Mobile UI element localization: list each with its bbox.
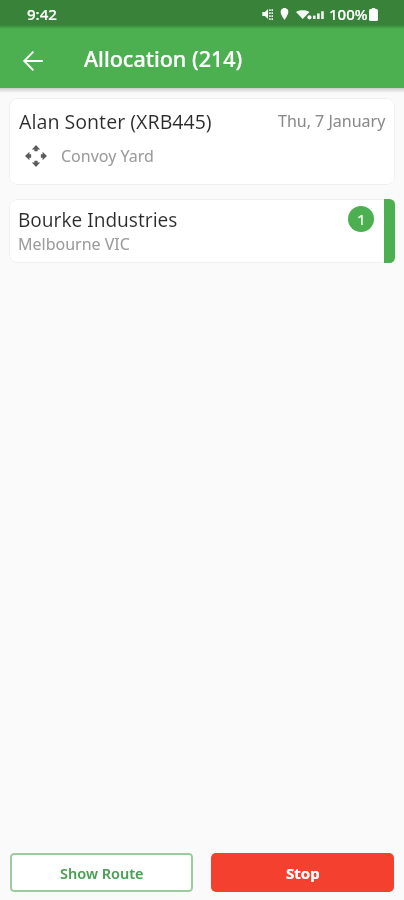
button[interactable]: Stop — [211, 853, 394, 892]
staticText: 1 — [357, 209, 366, 229]
staticText: Thu, 7 January — [278, 110, 386, 132]
staticText: Alan Sonter (XRB445) — [19, 108, 212, 135]
staticText: Show Route — [60, 863, 144, 883]
button[interactable]: Back — [12, 40, 53, 81]
button[interactable]: Alan Sonter (XRB445) — [9, 98, 395, 185]
staticText: 9:42 — [27, 4, 57, 24]
staticText: Convoy Yard — [61, 145, 154, 167]
staticText: Allocation (214) — [84, 44, 243, 73]
staticText: 100% — [329, 4, 368, 24]
staticText: Bourke Industries — [18, 207, 178, 233]
staticText: Melbourne VIC — [18, 233, 130, 255]
staticText: Stop — [286, 863, 320, 883]
button[interactable]: Show Route — [10, 853, 193, 892]
button[interactable]: Bourke Industries — [9, 199, 395, 263]
